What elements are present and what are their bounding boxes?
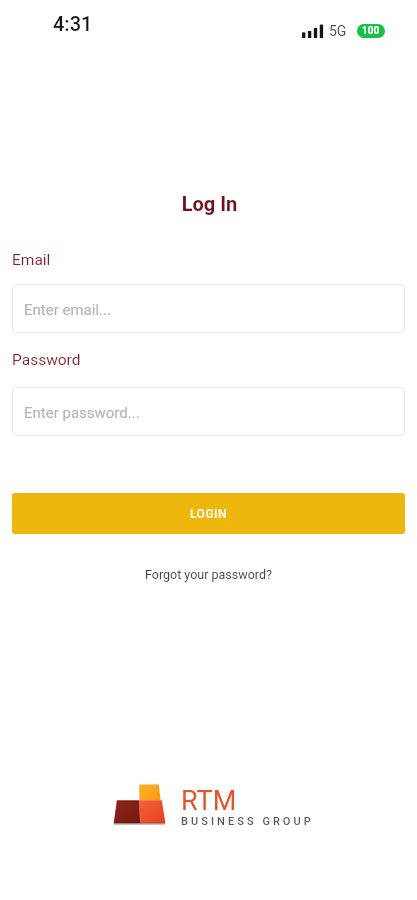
staticText: Enter password... [24, 404, 140, 422]
other: RTM Business Group logo [113, 784, 165, 825]
staticText: 4:31 [53, 12, 93, 35]
other: Battery 100 percent [357, 24, 385, 38]
staticText: Log In [1, 192, 417, 215]
button[interactable]: LOGIN [12, 493, 405, 534]
button[interactable]: Enter password... [12, 387, 405, 436]
staticText: 100 [362, 25, 380, 37]
staticText: RTM [181, 785, 237, 817]
staticText: BUSINESS GROUP [181, 815, 314, 828]
staticText: Enter email... [24, 301, 111, 319]
staticText: 5G [329, 23, 347, 39]
other: Mobile signal strength [302, 24, 324, 38]
button[interactable]: Enter email... [12, 284, 405, 333]
staticText: Password [12, 351, 81, 369]
staticText: Email [12, 251, 51, 269]
staticText: Forgot your password? [145, 567, 272, 582]
staticText: LOGIN [190, 507, 227, 521]
button[interactable]: Forgot your password? [139, 563, 278, 586]
